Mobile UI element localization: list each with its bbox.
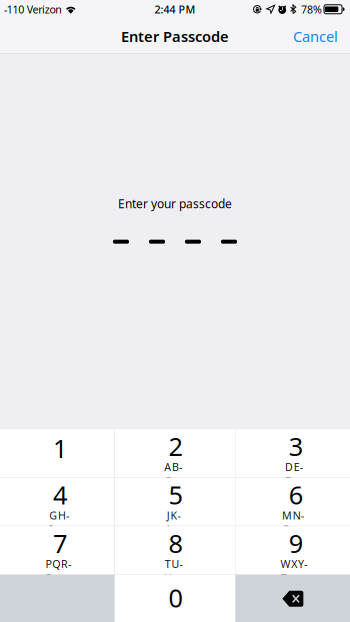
staticText: 8 <box>168 526 182 560</box>
button[interactable]: 1 <box>0 429 114 477</box>
button[interactable]: Delete <box>235 575 350 622</box>
staticText: 2 <box>168 429 182 463</box>
button[interactable]: 5 <box>115 478 235 526</box>
staticText: 3 <box>289 429 303 463</box>
staticText: 1 <box>53 431 67 465</box>
staticText: Enter your passcode <box>118 196 232 212</box>
staticText: 5 <box>168 478 182 511</box>
staticText: DEF <box>285 460 306 474</box>
staticText: 7 <box>53 526 67 560</box>
button[interactable]: 0 <box>115 575 235 622</box>
staticText: 9 <box>289 526 303 560</box>
staticText: Cancel <box>293 26 338 46</box>
staticText: 6 <box>289 478 303 511</box>
staticText: 78% <box>301 2 322 16</box>
button[interactable]: 4 <box>0 478 114 526</box>
button[interactable]: 8 <box>115 526 235 574</box>
button[interactable]: 6 <box>235 478 350 526</box>
staticText: -110 Verizon <box>4 2 62 16</box>
staticText: GHI <box>49 508 71 522</box>
staticText: Enter Passcode <box>121 26 229 46</box>
staticText: 4 <box>53 478 67 511</box>
button[interactable]: Cancel <box>287 21 344 51</box>
staticText: 2:44 PM <box>154 2 195 16</box>
staticText: MNO <box>282 508 309 522</box>
staticText: JKL <box>167 508 184 522</box>
staticText: PQRS <box>45 557 75 571</box>
staticText: ABC <box>164 460 187 474</box>
staticText: TUV <box>165 557 186 571</box>
button[interactable]: 2 <box>115 429 235 477</box>
button[interactable]: 7 <box>0 526 114 574</box>
button[interactable]: 9 <box>235 526 350 574</box>
staticText: 0 <box>168 581 182 614</box>
button[interactable]: 3 <box>235 429 350 477</box>
staticText: WXYZ <box>281 557 311 571</box>
